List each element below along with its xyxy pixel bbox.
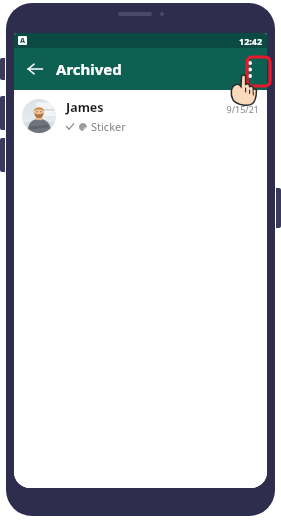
button[interactable]: More options (240, 54, 260, 84)
staticText: 9/15/21 (226, 103, 259, 115)
staticText: Archived (56, 59, 122, 79)
staticText: Sticker (91, 119, 126, 134)
staticText: A (20, 36, 26, 45)
staticText: James (66, 99, 104, 116)
button[interactable]: Back (20, 54, 50, 84)
staticText: 12:42 (239, 35, 263, 47)
button[interactable]: James (14, 90, 267, 142)
